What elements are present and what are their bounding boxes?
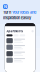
staticText: N [4,4,7,9]
staticText: Your Ideas and [12,10,36,15]
staticText: Inspiration Easily [3,16,31,20]
staticText: Turn [3,10,11,15]
staticText: Apartments [6,30,22,33]
